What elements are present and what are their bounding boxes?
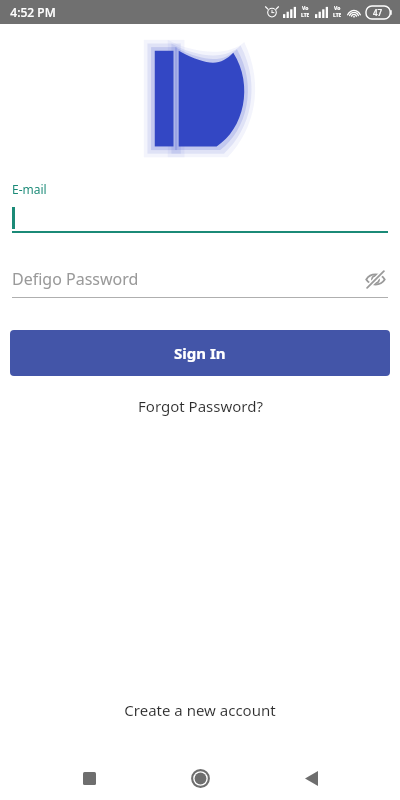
button[interactable]: Sign In xyxy=(10,330,390,376)
button[interactable]: Create a new account xyxy=(0,694,400,726)
staticText: Vo xyxy=(334,5,341,12)
staticText: Vo xyxy=(302,5,309,12)
button[interactable] xyxy=(12,205,388,231)
staticText: LTE xyxy=(333,12,342,19)
button[interactable]: Show password xyxy=(362,266,388,292)
button[interactable]: Forgot Password? xyxy=(0,392,400,420)
staticText: Defigo Password xyxy=(12,268,139,290)
staticText: E-mail xyxy=(12,181,47,197)
button[interactable]: Recent apps xyxy=(67,756,111,800)
staticText: LTE xyxy=(301,12,310,19)
button[interactable]: Home xyxy=(178,756,222,800)
button[interactable]: Back xyxy=(289,756,333,800)
staticText: 4:52 PM xyxy=(10,4,56,20)
staticText: Forgot Password? xyxy=(138,396,263,416)
staticText: 47 xyxy=(373,7,383,18)
staticText: Create a new account xyxy=(124,700,276,720)
staticText: Sign In xyxy=(174,343,226,363)
